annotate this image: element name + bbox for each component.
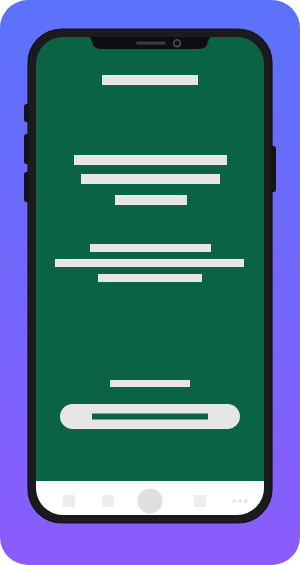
button[interactable]: Tab one [56, 491, 82, 511]
button[interactable]: Primary action [60, 404, 240, 429]
button[interactable]: Tab two [95, 491, 121, 511]
button[interactable]: More options [226, 491, 254, 511]
button[interactable]: Home [137, 488, 163, 514]
button[interactable]: Tab three [187, 491, 213, 511]
